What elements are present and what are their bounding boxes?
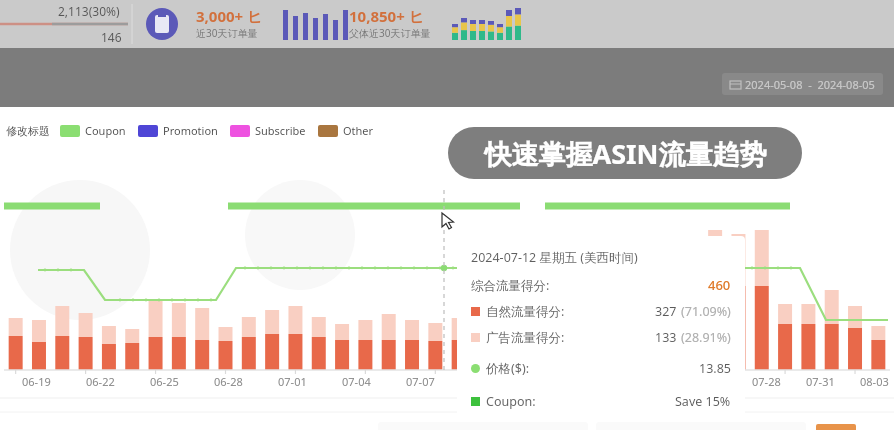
staticText: 327 [655,303,677,320]
button[interactable]: Coupon [60,123,126,138]
staticText: Promotion [163,123,218,138]
staticText: 07-07 [406,374,435,389]
button[interactable]: Subscribe [230,123,306,138]
staticText: 修改标题 [6,124,50,138]
staticText: 2,113(30%) [58,3,120,19]
staticText: 07-04 [342,374,371,389]
staticText: 综合流量得分: [471,277,550,294]
staticText: 06-28 [214,374,243,389]
staticText: 08-03 [860,374,889,389]
staticText: 快速掌握ASIN流量趋势 [484,135,767,172]
staticText: (71.09%) [681,303,731,320]
staticText: 价格($): [486,360,530,377]
staticText: Subscribe [255,123,306,138]
staticText: 460 [708,276,731,294]
staticText: 07-01 [278,374,307,389]
staticText: Coupon: [486,393,536,410]
staticText: Other [343,123,374,138]
staticText: 13.85 [699,360,731,377]
staticText: 父体近30天订单量 [349,26,431,40]
staticText: 133 [655,329,677,346]
staticText: Coupon [85,123,126,138]
staticText: 07-10 [470,374,499,389]
staticText: 近30天订单量 [196,26,258,40]
button[interactable]: Promotion [138,123,218,138]
staticText: 2024-07-12 星期五 (美西时间) [471,249,638,266]
other: Pointer [442,213,456,227]
staticText: 06-25 [150,374,179,389]
button[interactable]: Other [318,123,374,138]
button[interactable]: 2024-07-12 星期五 (美西时间) [457,236,745,419]
staticText: 2024-05-08 - 2024-08-05 [745,77,875,92]
staticText: 自然流量得分: [486,303,565,320]
staticText: (28.91%) [681,329,731,346]
staticText: 10,850+ ヒ [349,6,425,26]
staticText: 广告流量得分: [486,329,565,346]
staticText: 3,000+ ヒ [196,6,263,26]
staticText: 07-28 [752,374,781,389]
staticText: 07-31 [806,374,835,389]
button[interactable]: 2024-05-08 - 2024-08-05 [722,73,883,95]
staticText: 146 [101,29,122,45]
staticText: 06-22 [86,374,115,389]
staticText: 06-19 [22,374,51,389]
staticText: Save 15% [675,393,731,410]
button[interactable]: 快速掌握ASIN流量趋势 [448,127,802,179]
